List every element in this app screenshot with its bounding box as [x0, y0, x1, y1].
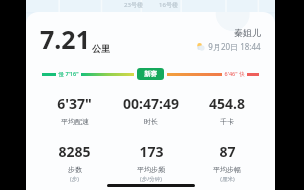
staticText: 7.21	[40, 22, 90, 56]
staticText: 16号楼	[159, 1, 178, 9]
staticText: 00:47:49	[123, 94, 179, 113]
staticText: 6'37"	[57, 94, 92, 113]
staticText: 公里	[92, 43, 110, 54]
staticText: 新赛	[144, 70, 157, 78]
staticText: 千卡	[220, 117, 234, 126]
button[interactable]: 6'37"	[36, 94, 113, 126]
staticText: 6'46" 快	[224, 70, 245, 78]
button[interactable]: 00:47:49	[113, 94, 189, 126]
staticText: 慢 7'16"	[58, 70, 79, 78]
other: Weather	[196, 42, 205, 51]
staticText: 8285	[58, 142, 91, 161]
staticText: 平均配速	[61, 117, 89, 126]
staticText: 454.8	[209, 94, 245, 113]
button[interactable]: 8285	[36, 142, 113, 183]
staticText: 秦姐儿	[234, 27, 261, 38]
button[interactable]: 454.8	[189, 94, 265, 126]
staticText: 步数	[68, 165, 82, 174]
button[interactable]: 87	[189, 142, 265, 183]
staticText: 173	[139, 142, 164, 161]
button[interactable]: 慢 7'16"	[42, 66, 259, 82]
staticText: (步/分钟)	[140, 175, 162, 183]
staticText: 平均步幅	[213, 165, 241, 174]
staticText: (厘米)	[220, 175, 235, 183]
staticText: 23号楼	[124, 1, 143, 9]
button[interactable]: 173	[113, 142, 189, 183]
staticText: 平均步频	[137, 165, 165, 174]
staticText: 9月20日 18:44	[208, 41, 261, 52]
staticText: 87	[219, 142, 236, 161]
staticText: 时长	[144, 117, 158, 126]
staticText: (步)	[70, 175, 79, 183]
